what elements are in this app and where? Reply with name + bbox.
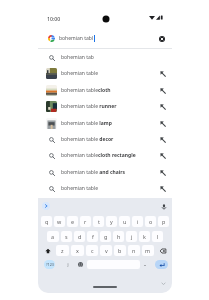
button[interactable]: c	[86, 245, 98, 256]
button[interactable]: o	[145, 216, 156, 227]
staticText: bohemian tablecloth rectangle	[61, 152, 136, 159]
button[interactable]: i	[132, 216, 143, 227]
button[interactable]: Clear query	[155, 32, 169, 46]
button[interactable]: Insert suggestion into search box	[156, 149, 169, 162]
button[interactable]: bohemian table	[38, 180, 172, 196]
button[interactable]: j	[126, 231, 137, 242]
staticText: r	[84, 218, 87, 225]
staticText: x	[76, 247, 79, 254]
button[interactable]: ?123	[44, 260, 55, 269]
button[interactable]: bohemian table runner	[38, 98, 172, 114]
button[interactable]: l	[152, 231, 163, 242]
button[interactable]: e	[67, 216, 78, 227]
button[interactable]: a	[47, 231, 59, 242]
button[interactable]: t	[93, 216, 104, 227]
button[interactable]: bohemian tab	[38, 49, 172, 65]
staticText: v	[105, 247, 108, 254]
staticText: m	[145, 247, 151, 254]
button[interactable]: q	[41, 216, 52, 227]
staticText: y	[110, 218, 113, 225]
staticText: bohemian table	[61, 70, 98, 77]
staticText: n	[132, 247, 136, 254]
button[interactable]: x	[71, 245, 84, 256]
button[interactable]: bohemian tabl	[38, 29, 172, 48]
button[interactable]: y	[106, 216, 117, 227]
button[interactable]: p	[158, 216, 169, 227]
staticText: bohemian tab	[61, 54, 94, 61]
button[interactable]: s	[61, 231, 72, 242]
staticText: s	[65, 233, 68, 240]
button[interactable]: bohemian table	[38, 65, 172, 81]
staticText: bohemian table	[61, 185, 98, 192]
staticText: bohemian table lamp	[61, 120, 112, 127]
staticText: q	[45, 218, 49, 225]
button[interactable]: Enter	[155, 260, 168, 269]
button[interactable]: Insert suggestion into search box	[156, 67, 169, 80]
staticText: h	[117, 233, 121, 240]
staticText: u	[123, 218, 127, 225]
staticText: bohemian table and chairs	[61, 169, 126, 176]
button[interactable]: Insert suggestion into search box	[156, 117, 169, 130]
button[interactable]: f	[87, 231, 98, 242]
staticText: k	[143, 233, 146, 240]
button[interactable]: bohemian table and chairs	[38, 164, 172, 180]
staticText: ?123	[46, 262, 54, 267]
button[interactable]: bohemian table decor	[38, 131, 172, 147]
button[interactable]: b	[114, 245, 126, 256]
button[interactable]: bohemian tablecloth	[38, 82, 172, 98]
button[interactable]: Period	[141, 260, 149, 269]
button[interactable]: n	[128, 245, 140, 256]
button[interactable]: bohemian tablecloth rectangle	[38, 147, 172, 163]
button[interactable]: Backspace	[156, 245, 169, 256]
staticText: l	[157, 233, 159, 240]
button[interactable]: bohemian table lamp	[38, 115, 172, 131]
staticText: e	[71, 218, 75, 225]
button[interactable]: Hide keyboard	[159, 279, 168, 288]
button[interactable]: r	[80, 216, 91, 227]
button[interactable]: z	[56, 245, 69, 256]
staticText: bohemian tabl	[59, 35, 94, 42]
staticText: o	[149, 218, 153, 225]
button[interactable]: Insert suggestion into search box	[156, 133, 169, 146]
button[interactable]: Insert suggestion into search box	[156, 100, 169, 113]
staticText: j	[131, 233, 133, 240]
button[interactable]: Insert suggestion into search box	[156, 182, 169, 195]
button[interactable]: u	[119, 216, 130, 227]
button[interactable]: g	[100, 231, 111, 242]
staticText: b	[118, 247, 122, 254]
staticText: 10:00	[47, 15, 61, 22]
button[interactable]: v	[100, 245, 112, 256]
button[interactable]: Shift	[41, 245, 54, 256]
button[interactable]: More suggestions	[41, 201, 51, 211]
button[interactable]: Comma	[64, 260, 72, 269]
button[interactable]: Voice input	[158, 201, 169, 212]
staticText: bohemian table runner	[61, 103, 117, 110]
button[interactable]: w	[54, 216, 65, 227]
button[interactable]: Insert suggestion into search box	[156, 166, 169, 179]
staticText: w	[57, 218, 62, 225]
staticText: p	[162, 218, 166, 225]
staticText: z	[61, 247, 64, 254]
staticText: a	[51, 233, 55, 240]
staticText: i	[137, 218, 139, 225]
button[interactable]: Insert suggestion into search box	[156, 84, 169, 97]
staticText: bohemian tablecloth	[61, 87, 111, 94]
staticText: d	[78, 233, 82, 240]
button[interactable]: d	[74, 231, 85, 242]
staticText: c	[91, 247, 94, 254]
button[interactable]: k	[139, 231, 150, 242]
staticText: g	[104, 233, 108, 240]
staticText: f	[92, 233, 94, 240]
button[interactable]: m	[142, 245, 154, 256]
button[interactable]: h	[113, 231, 124, 242]
staticText: t	[98, 218, 100, 225]
button[interactable]: Emoji	[76, 260, 84, 269]
staticText: bohemian table decor	[61, 136, 114, 143]
